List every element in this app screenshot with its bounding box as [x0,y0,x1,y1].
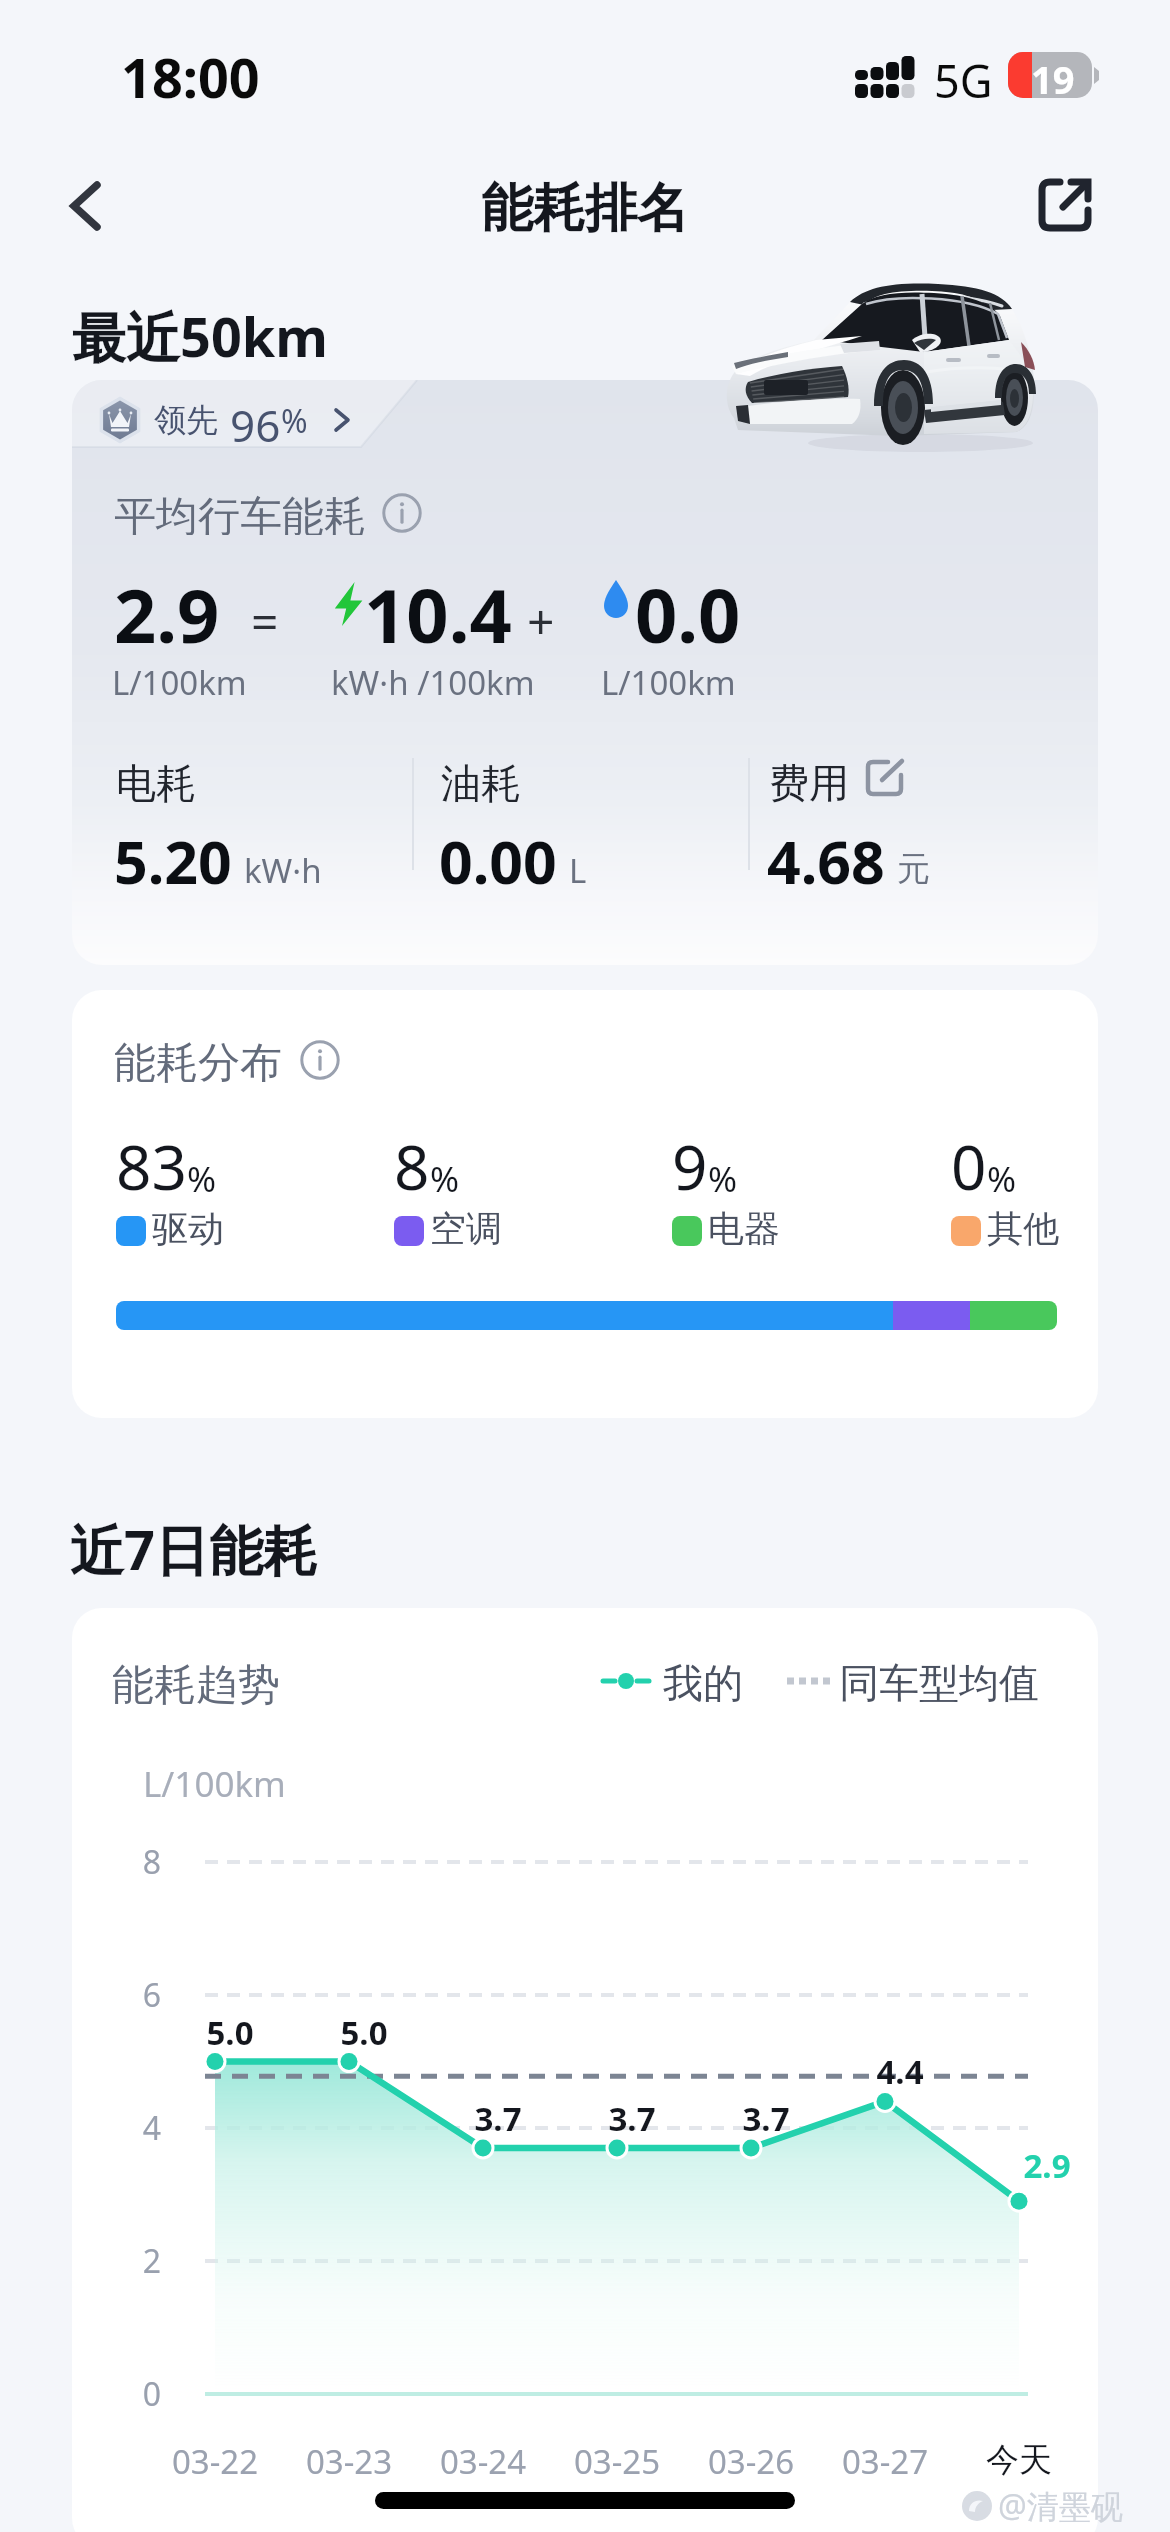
staticText: 同车型均值 [839,1658,1039,1708]
staticText: 03-25 [547,2439,687,2484]
staticText: kW·h /100km [331,660,535,705]
staticText: 5G [934,50,993,111]
staticText: @清墨砚 [998,2484,1123,2528]
staticText: 油耗 [441,758,521,808]
staticText: 电器 [708,1206,780,1251]
staticText: 3.7 [448,2096,548,2141]
staticText: 能耗排名 [0,176,1170,242]
staticText: = [251,588,279,653]
staticText: 今天 [949,2439,1089,2481]
staticText: % [708,1155,738,1203]
button[interactable]: 领先 [96,395,356,445]
staticText: 能耗趋势 [112,1659,280,1712]
staticText: kW·h [244,848,322,893]
staticText: 8 [394,1124,430,1208]
staticText: + [527,588,555,653]
staticText: 3.7 [716,2096,816,2141]
staticText: 能耗分布 [114,1037,282,1083]
staticText: % [187,1155,217,1203]
staticText: 0 [951,1124,987,1208]
staticText: 3.7 [582,2096,682,2141]
staticText: 03-26 [681,2439,821,2484]
staticText: 5.20 [114,821,232,901]
staticText: 0 [124,2372,180,2416]
button[interactable]: Share [1018,158,1112,252]
staticText: 我的 [663,1658,743,1708]
staticText: 2.9 [997,2143,1097,2188]
staticText: 领先 [154,400,218,440]
staticText: L/100km [601,660,736,705]
staticText: 其他 [987,1206,1059,1251]
staticText: 83 [116,1124,187,1208]
staticText: 18:00 [121,40,260,114]
staticText: 4.4 [850,2049,950,2094]
staticText: 最近50km [72,299,328,373]
staticText: 2 [124,2239,180,2283]
staticText: 0.00 [439,821,557,901]
staticText: L/100km [112,660,247,705]
staticText: 5.0 [180,2010,280,2055]
button[interactable]: 领先 [72,380,1098,965]
button[interactable]: Back [44,159,140,255]
staticText: 平均行车能耗 [114,491,366,535]
button[interactable]: Edit cost [861,754,909,802]
staticText: 2.9 [114,564,220,665]
staticText: L/100km [143,1760,286,1808]
staticText: 19 [1031,53,1075,105]
staticText: 03-27 [815,2439,955,2484]
staticText: 03-24 [413,2439,553,2484]
staticText: 10.4 [364,564,512,665]
staticText: % [430,1155,460,1203]
staticText: 空调 [430,1206,502,1251]
button[interactable]: 能耗趋势 [72,1608,1098,2532]
staticText: 6 [124,1973,180,2017]
staticText: 驱动 [152,1206,224,1251]
staticText: 9 [672,1124,708,1208]
staticText: 96 [230,395,281,445]
staticText: % [987,1155,1017,1203]
staticText: 03-23 [279,2439,419,2484]
staticText: 电耗 [116,758,196,808]
staticText: 费用 [769,758,849,808]
staticText: 03-22 [145,2439,285,2484]
staticText: 0.0 [635,564,741,665]
staticText: 元 [897,848,930,890]
staticText: L [569,848,587,893]
staticText: 4 [124,2106,180,2150]
staticText: 5.0 [314,2010,414,2055]
staticText: 8 [124,1840,180,1884]
staticText: % [281,399,308,443]
staticText: 近7日能耗 [70,1512,317,1586]
staticText: 4.68 [767,821,885,901]
button[interactable]: 能耗分布 [72,990,1098,1418]
